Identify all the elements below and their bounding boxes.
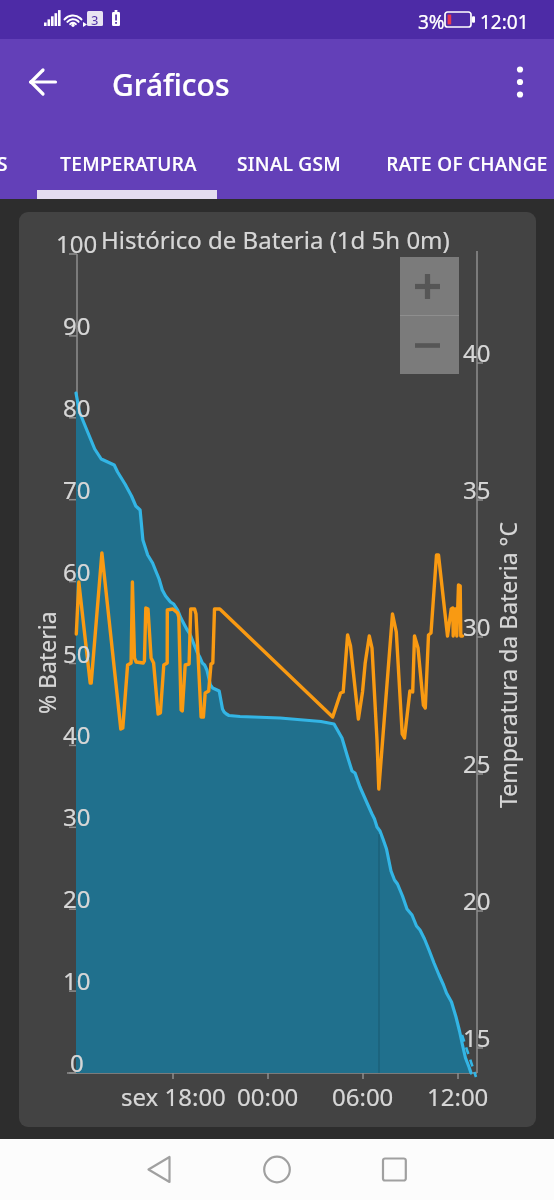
staticText: 30 xyxy=(463,610,491,643)
staticText: 40 xyxy=(63,718,91,751)
staticText: TEMPERATURA xyxy=(60,151,197,177)
staticText: 35 xyxy=(463,473,491,506)
staticText: 40 xyxy=(463,336,491,369)
button[interactable]: TEMPERATURA xyxy=(18,135,238,193)
staticText: 60 xyxy=(63,555,91,588)
button[interactable]: More options xyxy=(496,58,544,106)
staticText: 90 xyxy=(63,309,91,342)
button[interactable]: SINAL GSM xyxy=(179,135,399,193)
staticText: sex 18:00 xyxy=(121,1080,226,1113)
staticText: RATE OF CHANGE xyxy=(386,151,548,177)
button[interactable]: Zoom in xyxy=(400,257,459,315)
staticText: 15 xyxy=(463,1021,491,1054)
staticText: 20 xyxy=(63,882,91,915)
staticText: 25 xyxy=(463,747,491,780)
staticText: 80 xyxy=(63,391,91,424)
button[interactable]: Zoom out xyxy=(400,316,459,374)
staticText: Gráficos xyxy=(112,64,230,105)
staticText: 0 xyxy=(70,1046,84,1079)
staticText: 3% xyxy=(418,9,445,35)
staticText: 20 xyxy=(463,884,491,917)
staticText: 30 xyxy=(63,800,91,833)
staticText: 3 xyxy=(91,11,99,26)
staticText: % Bateria xyxy=(31,611,62,714)
button[interactable]: S xyxy=(0,135,112,193)
staticText: 50 xyxy=(63,637,91,670)
staticText: SINAL GSM xyxy=(237,151,341,177)
staticText: 70 xyxy=(63,473,91,506)
staticText: 00:00 xyxy=(237,1080,299,1113)
staticText: 12:00 xyxy=(427,1080,489,1113)
staticText: S xyxy=(0,151,8,177)
staticText: 10 xyxy=(63,964,91,997)
staticText: 100 xyxy=(56,227,98,260)
staticText: Histórico de Bateria (1d 5h 0m) xyxy=(101,223,450,256)
button[interactable]: Back xyxy=(19,58,67,106)
staticText: 12:01 xyxy=(480,9,529,35)
button[interactable]: RATE OF CHANGE xyxy=(357,135,554,193)
staticText: 06:00 xyxy=(332,1080,394,1113)
staticText: Temperatura da Bateria °C xyxy=(492,521,523,808)
